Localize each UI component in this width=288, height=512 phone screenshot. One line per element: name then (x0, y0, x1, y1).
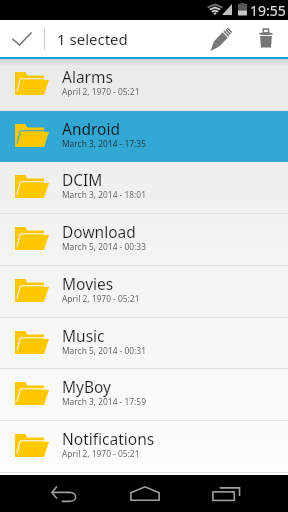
button[interactable]: Back (26, 475, 102, 512)
staticText: Pictures (62, 480, 121, 501)
staticText: Movies (62, 273, 114, 294)
button[interactable]: Notifications (0, 421, 288, 473)
button[interactable]: Home (107, 475, 183, 512)
staticText: April 2, 1970 - 05:21 (62, 448, 140, 459)
button[interactable]: Rename (199, 20, 243, 57)
button[interactable]: Done (0, 20, 44, 57)
staticText: Alarms (62, 66, 113, 87)
staticText: Music (62, 325, 105, 346)
button[interactable]: Recent apps (188, 475, 264, 512)
button[interactable]: Alarms (0, 59, 288, 111)
staticText: March 3, 2014 - 17:59 (62, 396, 146, 407)
button[interactable]: Android (0, 111, 288, 162)
staticText: March 3, 2014 - 17:35 (62, 138, 146, 149)
button[interactable]: DCIM (0, 162, 288, 214)
staticText: March 5, 2014 - 00:31 (62, 345, 146, 356)
staticText: Download (62, 221, 136, 242)
staticText: April 2, 1970 - 05:21 (62, 86, 140, 97)
staticText: 1 selected (57, 29, 128, 49)
staticText: Notifications (62, 428, 155, 449)
staticText: DCIM (62, 169, 103, 190)
staticText: April 2, 1970 - 05:21 (62, 293, 140, 304)
staticText: 19:55 (250, 1, 286, 20)
button[interactable]: Movies (0, 266, 288, 318)
button[interactable]: Delete (244, 20, 288, 57)
button[interactable]: MyBoy (0, 369, 288, 421)
button[interactable]: Pictures (0, 473, 288, 512)
staticText: March 3, 2014 - 18:01 (62, 500, 146, 511)
button[interactable]: Download (0, 214, 288, 266)
staticText: March 3, 2014 - 18:01 (62, 189, 146, 200)
button[interactable]: Music (0, 318, 288, 369)
staticText: MyBoy (62, 376, 112, 397)
staticText: Android (62, 118, 121, 139)
staticText: March 5, 2014 - 00:33 (62, 241, 146, 252)
